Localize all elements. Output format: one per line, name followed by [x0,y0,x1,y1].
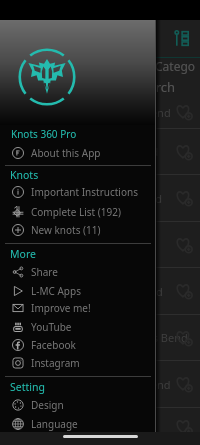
button[interactable]: Anchor Bend [0,268,200,314]
staticText: More [10,247,36,261]
staticText: Instagram [31,356,80,370]
staticText: Setting [10,380,45,394]
button[interactable]: Butterfly Bend [0,96,200,128]
staticText: Knots [10,168,39,181]
staticText: Facebook [31,338,76,352]
staticText: Anchor Bend [96,284,163,299]
button[interactable]: About this App [0,143,156,162]
button[interactable]: New knots (11) [0,221,156,239]
button[interactable]: Improve me! [0,299,156,317]
button[interactable]: Sheet Bend [0,222,200,267]
staticText: About this App [31,146,101,160]
staticText: YouTube [31,320,72,334]
staticText: Language [31,417,78,431]
button[interactable]: L-MC Apps [0,282,156,299]
button[interactable]: Share [0,261,156,282]
staticText: Complete List (192) [31,205,121,219]
button[interactable]: Instagram [0,354,156,372]
button[interactable]: Complete List (192) [0,203,156,221]
button[interactable]: Facebook [0,336,156,354]
staticText: Share [31,265,58,279]
button[interactable]: Alpine Bend [0,129,200,174]
staticText: Knots 360 Pro [11,127,77,141]
staticText: Sheet Bend [96,237,155,252]
button[interactable]: Category [173,29,192,48]
button[interactable]: Zeppelin Bend [0,361,200,407]
staticText: Butterfly Bend [96,105,171,120]
staticText: Important Instructions [31,185,138,199]
staticText: L-MC Apps [31,284,81,298]
staticText: Improve me! [31,301,91,315]
button[interactable]: Design [0,394,156,415]
staticText: Design [31,398,64,412]
button[interactable]: Carrick Bend [0,175,200,221]
staticText: Search [134,78,176,96]
button[interactable]: YouTube [0,317,156,336]
button[interactable]: Blood Knot [0,408,200,445]
staticText: New knots (11) [31,223,101,237]
staticText: Zeppelin Bend [96,377,171,392]
button[interactable]: Fisherman's Bend [0,315,200,360]
staticText: Alpine Bend [96,144,159,159]
staticText: Category [155,58,200,78]
staticText: Carrick Bend [96,191,162,206]
staticText: Fisherman's Bend [96,330,188,345]
button[interactable]: Important Instructions [0,181,156,203]
staticText: Blood Knot [96,419,154,434]
button[interactable]: Language [0,415,156,433]
